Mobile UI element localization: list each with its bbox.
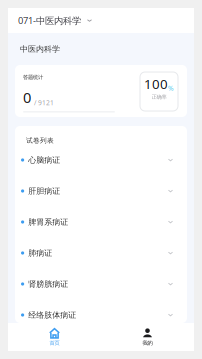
- button[interactable]: 心脑病证: [15, 144, 187, 175]
- button[interactable]: 肾膀胱病证: [15, 268, 187, 299]
- staticText: 我的: [142, 340, 152, 346]
- staticText: 试卷列表: [26, 136, 54, 144]
- staticText: 肾膀胱病证: [28, 279, 68, 289]
- button[interactable]: 经络肢体病证: [15, 299, 187, 330]
- staticText: 心脑病证: [28, 155, 60, 165]
- button[interactable]: 首页: [8, 323, 101, 351]
- staticText: 肺病证: [28, 248, 52, 258]
- staticText: %: [168, 84, 174, 93]
- staticText: 0: [23, 88, 31, 107]
- staticText: 经络肢体病证: [28, 310, 76, 320]
- button[interactable]: 肝胆病证: [15, 175, 187, 206]
- button[interactable]: 脾胃系病证: [15, 206, 187, 237]
- staticText: 中医内科学: [20, 44, 60, 54]
- button[interactable]: 我的: [101, 323, 194, 351]
- staticText: 首页: [49, 340, 59, 346]
- button[interactable]: 肺病证: [15, 237, 187, 268]
- button[interactable]: 071-中医内科学: [8, 8, 100, 33]
- staticText: 脾胃系病证: [28, 217, 68, 227]
- staticText: 071-中医内科学: [18, 14, 81, 27]
- staticText: / 9121: [34, 98, 54, 107]
- staticText: 肝胆病证: [28, 186, 60, 196]
- staticText: 100: [144, 75, 168, 93]
- staticText: 答题统计: [23, 74, 43, 81]
- staticText: 正确率: [151, 94, 166, 100]
